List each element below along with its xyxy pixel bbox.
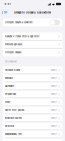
button[interactable]: Kalendáře xyxy=(3,82,62,90)
button[interactable]: Sdílet moji polohu xyxy=(3,106,62,114)
button[interactable]: Mikrofon xyxy=(3,122,62,130)
staticText: Omezení obsahu a soukromí xyxy=(14,11,51,14)
staticText: Povolit xyxy=(51,109,58,111)
staticText: Omezení obsahu a soukromí xyxy=(5,21,33,24)
button[interactable]: Rozpoznávání řeči xyxy=(3,130,62,138)
button[interactable]: Povolené aplikace xyxy=(3,40,62,48)
staticText: Povolené aplikace xyxy=(5,43,22,46)
button[interactable]: Omezení obsahu xyxy=(3,48,62,56)
staticText: Kontakty xyxy=(5,77,13,79)
staticText: Povolit xyxy=(51,85,58,87)
staticText: Nákupy v iTunes Storu a App Storu xyxy=(5,35,39,38)
staticText: Omezení obsahu xyxy=(5,51,21,54)
staticText: SOUKROMÍ xyxy=(5,60,17,63)
staticText: Fotky xyxy=(5,101,10,103)
button[interactable]: Nákupy v iTunes Storu a App Storu xyxy=(3,32,62,40)
button[interactable]: Omezení obsahu a soukromí xyxy=(3,18,62,26)
staticText: Povolit xyxy=(51,69,58,71)
staticText: Povolit xyxy=(51,133,58,135)
staticText: Připomínky xyxy=(5,93,16,95)
button[interactable]: Fotky xyxy=(3,98,62,106)
staticText: Povolit xyxy=(51,125,58,127)
button[interactable]: Reklama Apple xyxy=(3,138,62,141)
button[interactable]: Polohové služby xyxy=(3,66,62,74)
button[interactable]: Připomínky xyxy=(3,90,62,98)
staticText: Mikrofon xyxy=(5,125,14,127)
staticText: Povolit xyxy=(51,77,58,79)
staticText: Povolit xyxy=(51,101,58,103)
staticText: Sdílet moji polohu xyxy=(5,109,24,111)
staticText: Povolit xyxy=(51,117,58,119)
staticText: 9:41 xyxy=(4,2,10,6)
staticText: Povolit xyxy=(51,93,58,95)
button[interactable]: Kontakty xyxy=(3,74,62,82)
staticText: Rozpoznávání řeči xyxy=(5,133,22,135)
staticText: Polohové služby xyxy=(5,69,20,71)
staticText: Bluetooth sdílení xyxy=(5,117,22,119)
staticText: Zpět xyxy=(3,11,7,14)
staticText: Kalendáře xyxy=(5,85,14,87)
button[interactable]: Zpět xyxy=(0,8,8,17)
button[interactable]: Bluetooth sdílení xyxy=(3,114,62,122)
